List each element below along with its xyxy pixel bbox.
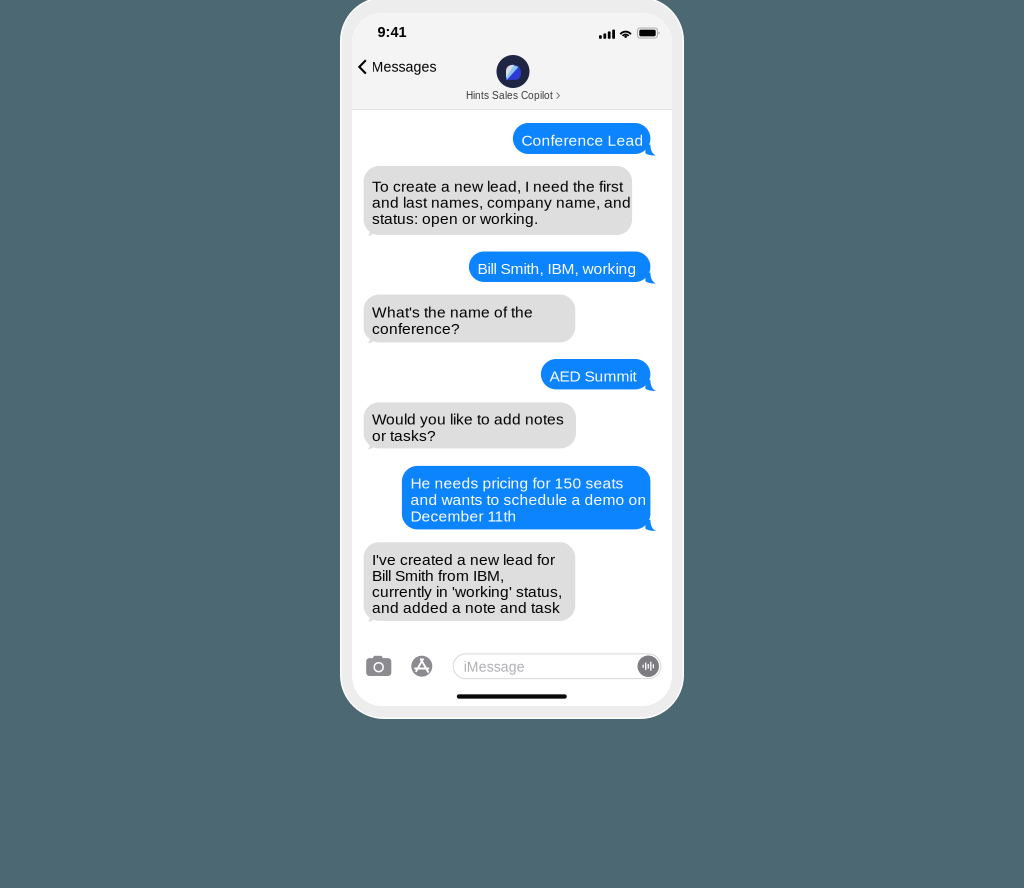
staticText: AED Summit — [549, 368, 636, 385]
staticText: status: open or working. — [372, 210, 538, 227]
staticText: conference? — [372, 320, 460, 337]
staticText: He needs pricing for 150 seats — [410, 474, 623, 492]
button[interactable]: iMessage — [453, 654, 661, 679]
staticText: and wants to schedule a demo on — [410, 491, 646, 508]
staticText: Hints Sales Copilot — [466, 90, 553, 101]
staticText: iMessage — [464, 659, 525, 675]
button[interactable]: Hints Sales Copilot — [453, 55, 573, 101]
staticText: December 11th — [410, 507, 516, 525]
staticText: To create a new lead, I need the first — [372, 178, 623, 195]
staticText: I've created a new lead for — [372, 551, 555, 568]
staticText: Messages — [371, 59, 436, 75]
staticText: Would you like to add notes — [372, 410, 564, 428]
staticText: What's the name of the — [372, 304, 533, 321]
staticText: Conference Lead — [521, 132, 643, 149]
staticText: 9:41 — [377, 24, 406, 40]
staticText: or tasks? — [372, 427, 436, 444]
staticText: Bill Smith, IBM, working — [477, 260, 636, 277]
button[interactable]: Take photo — [366, 656, 391, 676]
button[interactable]: Messages — [354, 54, 440, 80]
staticText: and last names, company name, and — [372, 194, 631, 211]
staticText: currently in 'working' status, — [372, 583, 562, 600]
staticText: and added a note and task — [372, 599, 560, 616]
button[interactable]: App Store — [409, 656, 434, 677]
staticText: Bill Smith from IBM, — [372, 567, 504, 584]
